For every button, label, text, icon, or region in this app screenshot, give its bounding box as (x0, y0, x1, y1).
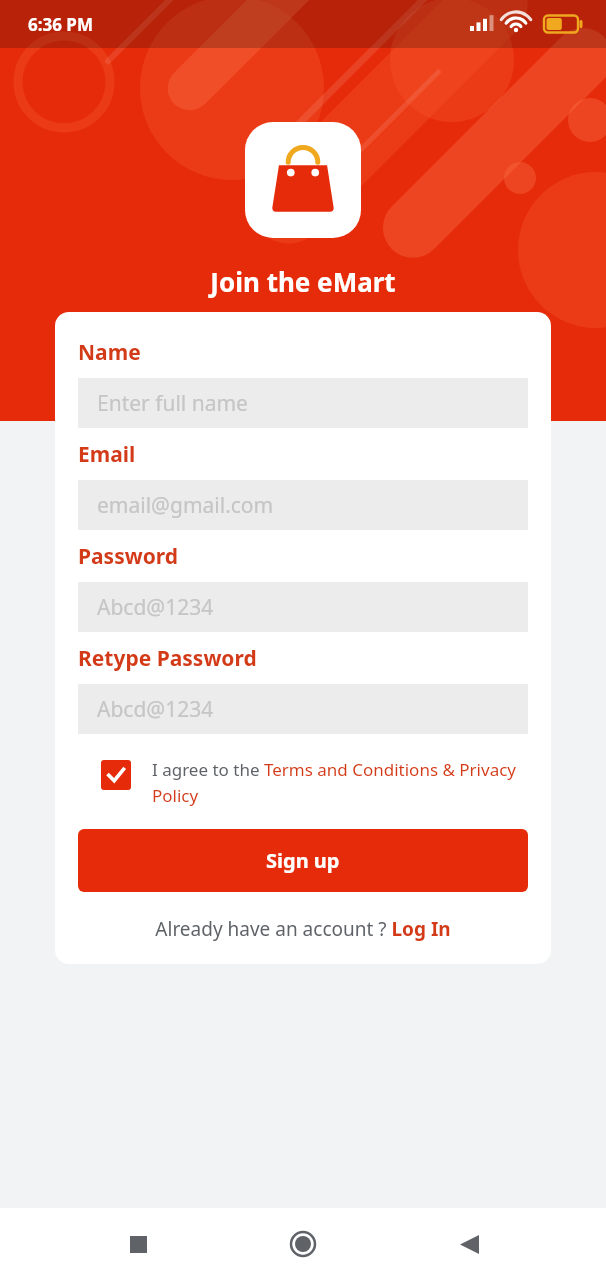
staticText: Abcd@1234 (97, 695, 214, 724)
staticText: Retype Password (78, 644, 257, 673)
staticText: I agree to the Terms and Conditions & Pr… (152, 758, 528, 807)
staticText: Name (78, 338, 141, 367)
staticText: 6:36 PM (28, 13, 93, 36)
button[interactable]: email@gmail.com (78, 480, 528, 530)
staticText: email@gmail.com (97, 491, 274, 520)
staticText: Enter full name (97, 389, 248, 418)
button[interactable]: Recent apps (110, 1216, 166, 1272)
staticText: Already have an account ? Log In (155, 916, 451, 942)
staticText: Join the eMart (210, 264, 396, 299)
button[interactable]: Abcd@1234 (78, 582, 528, 632)
button[interactable]: Abcd@1234 (78, 684, 528, 734)
staticText: Password (78, 542, 179, 571)
button[interactable]: Sign up (78, 829, 528, 892)
other: Agree to terms checkbox (101, 760, 131, 790)
staticText: Abcd@1234 (97, 593, 214, 622)
staticText: Sign up (266, 847, 340, 874)
button[interactable]: Home (275, 1216, 331, 1272)
button[interactable]: Enter full name (78, 378, 528, 428)
staticText: Email (78, 440, 136, 469)
button[interactable]: Back (441, 1216, 497, 1272)
button[interactable]: Already have an account ? Log In (78, 916, 528, 942)
button[interactable]: Agree to terms checkbox (78, 758, 528, 807)
